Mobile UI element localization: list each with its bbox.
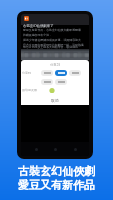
staticText: 愛豆又有新作品 <box>18 178 95 192</box>
button[interactable]: 取消 <box>21 96 89 105</box>
button[interactable]: Home <box>50 144 60 154</box>
staticText: 分享到 <box>21 63 89 67</box>
staticText: 愛豆又有新作品，古裝玄幻仙俠大劇即將開播 <box>23 28 81 32</box>
button[interactable] <box>55 70 67 76</box>
button[interactable]: Recents <box>70 144 80 154</box>
staticText: 分享到 <box>22 71 31 75</box>
button[interactable] <box>69 70 81 76</box>
staticText: 官方今日釋出最新預告片與劇照一組，引發熱議 <box>23 43 84 47</box>
button[interactable]: WeChat Moments <box>49 88 55 93</box>
staticText: 取消 <box>51 98 59 103</box>
button[interactable]: Mi app <box>24 16 29 21</box>
staticText: 古裝玄幻仙俠劇來了 <box>23 24 54 28</box>
button[interactable] <box>41 70 53 76</box>
button[interactable] <box>41 79 53 85</box>
button[interactable]: Back <box>31 144 41 154</box>
staticText: 該劇改編自同名小說， <box>23 33 52 37</box>
staticText: 預告片已同步上線各大視頻平台，敬請期待 <box>23 45 78 49</box>
button[interactable] <box>55 79 67 85</box>
staticText: 講述少年修仙歷練的成長故事，演員陣容強大 <box>23 38 81 42</box>
staticText: 微信朋友圈 <box>22 88 37 92</box>
staticText: 古裝玄幻仙俠劇 <box>18 164 95 178</box>
